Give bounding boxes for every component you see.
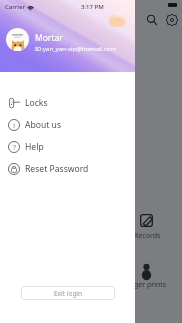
staticText: Mortar (35, 32, 63, 44)
staticText: 3:17 PM (81, 3, 104, 11)
staticText: Records (134, 231, 161, 241)
staticText: Help (25, 141, 44, 153)
staticText: ger prints (134, 280, 167, 290)
button[interactable]: i (0, 114, 135, 136)
button[interactable]: Locks (0, 92, 135, 114)
staticText: Reset Password (25, 163, 89, 175)
button[interactable]: Settings (166, 14, 178, 26)
staticText: i (13, 121, 15, 130)
button[interactable]: ? (0, 136, 135, 158)
staticText: ? (13, 143, 16, 152)
button[interactable]: Records (140, 214, 153, 227)
staticText: Carrier (5, 3, 25, 11)
staticText: Locks (25, 97, 48, 109)
button[interactable]: Exit login (21, 286, 115, 300)
button[interactable]: Fingerprints (140, 263, 153, 276)
staticText: ID:yan_yan-vip@foxmail.com (35, 45, 117, 53)
staticText: About us (25, 119, 62, 131)
staticText: Exit login (54, 289, 83, 298)
button[interactable]: Search (146, 14, 158, 26)
button[interactable]: Reset Password (0, 158, 135, 180)
